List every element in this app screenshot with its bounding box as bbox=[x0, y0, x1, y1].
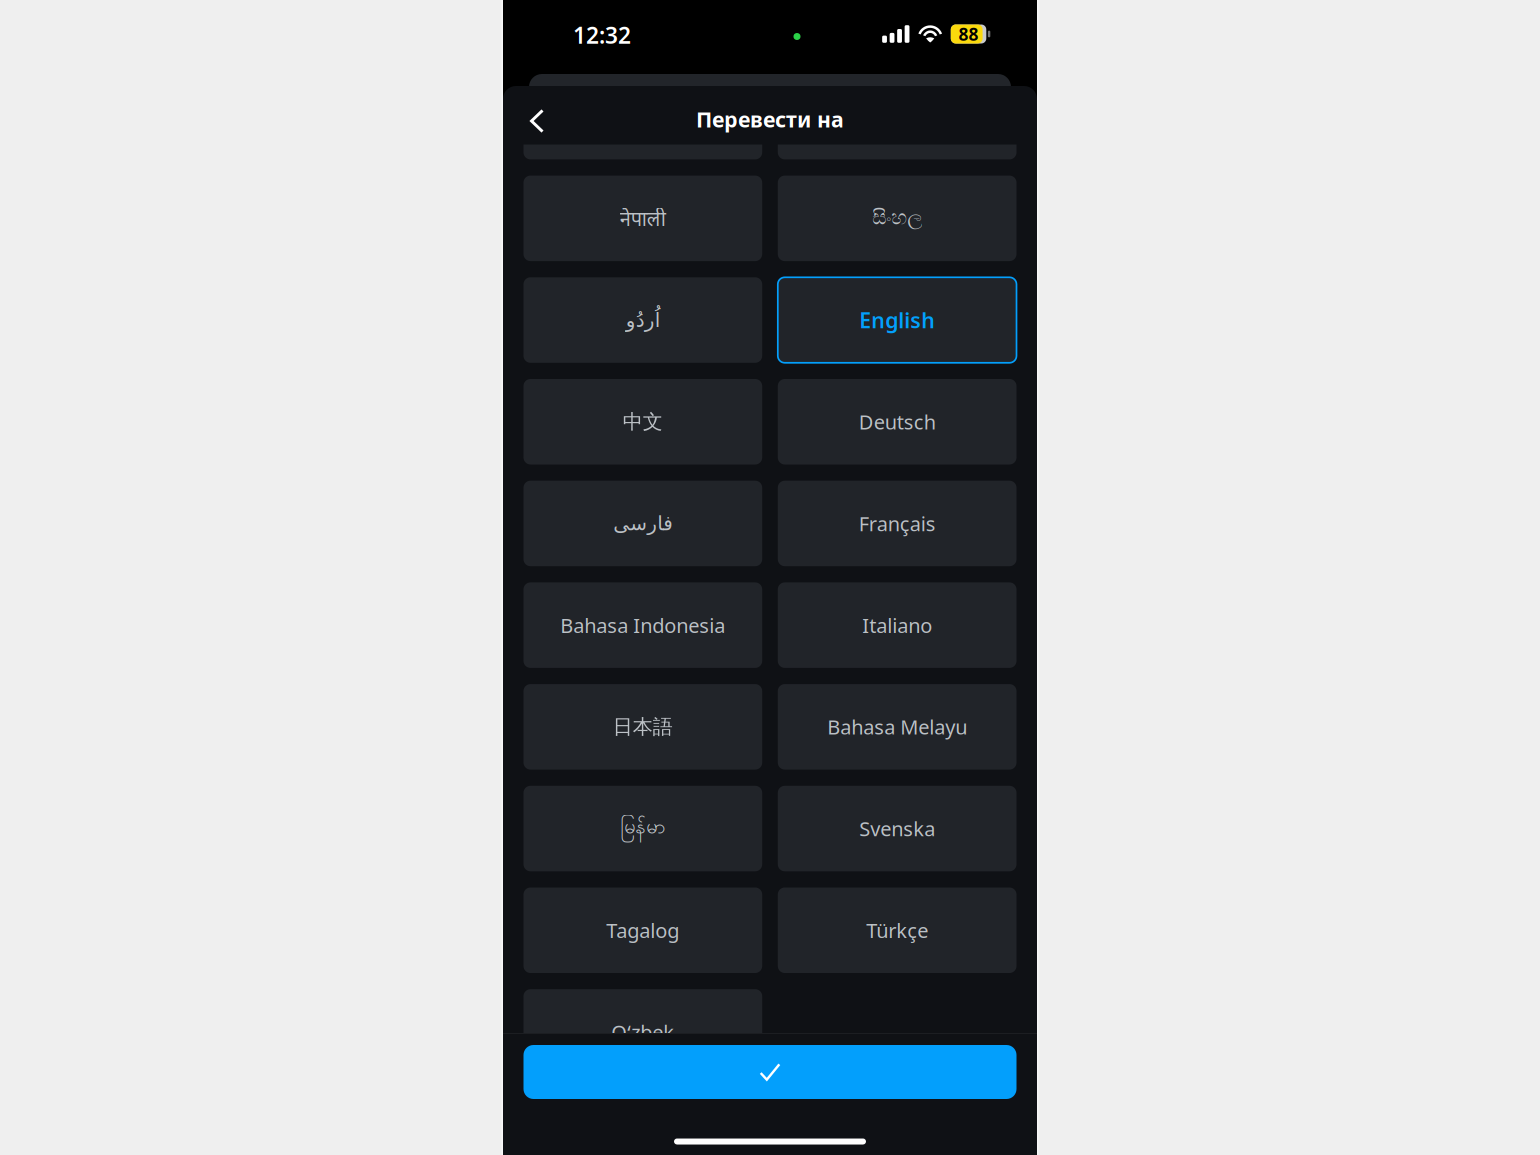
button[interactable]: မြန်မာ bbox=[523, 786, 762, 871]
staticText: Перевести на bbox=[696, 105, 844, 133]
staticText: O‘zbek bbox=[611, 1019, 674, 1045]
button[interactable]: فارسی bbox=[523, 481, 762, 566]
staticText: Italiano bbox=[862, 612, 932, 638]
button[interactable]: Confirm selection bbox=[523, 1045, 1016, 1099]
button[interactable]: 中文 bbox=[523, 379, 762, 464]
staticText: Svenska bbox=[859, 815, 935, 842]
staticText: Bahasa Indonesia bbox=[560, 612, 725, 638]
button[interactable]: Back bbox=[514, 98, 560, 144]
button[interactable]: Türkçe bbox=[778, 887, 1016, 973]
button[interactable]: اُردُو bbox=[523, 277, 762, 363]
staticText: Bahasa Melayu bbox=[827, 714, 967, 740]
button[interactable]: ਪੰਜਾਬੀ bbox=[523, 74, 762, 159]
button[interactable]: Svenska bbox=[778, 786, 1016, 871]
button[interactable]: සිංහල bbox=[778, 176, 1016, 261]
staticText: नेपाली bbox=[620, 205, 666, 232]
staticText: Français bbox=[859, 510, 936, 537]
staticText: 12:32 bbox=[573, 20, 631, 50]
button[interactable]: Tagalog bbox=[523, 887, 762, 973]
button[interactable]: Bahasa Melayu bbox=[778, 684, 1016, 770]
button[interactable]: 日本語 bbox=[523, 684, 762, 770]
staticText: Deutsch bbox=[859, 408, 936, 435]
staticText: မြန်မာ bbox=[620, 814, 665, 843]
staticText: සිංහල bbox=[872, 209, 922, 228]
button[interactable]: Français bbox=[778, 481, 1016, 566]
button[interactable]: नेपाली bbox=[523, 176, 762, 261]
button[interactable]: தமிழ் bbox=[778, 74, 1016, 159]
staticText: 中文 bbox=[623, 409, 663, 434]
button[interactable]: Italiano bbox=[778, 582, 1016, 668]
button[interactable]: Bahasa Indonesia bbox=[523, 582, 762, 668]
staticText: 日本語 bbox=[613, 715, 673, 739]
button[interactable]: O‘zbek bbox=[523, 989, 762, 1075]
staticText: English bbox=[859, 306, 935, 334]
button[interactable]: English bbox=[778, 277, 1016, 363]
staticText: اُردُو bbox=[625, 309, 660, 331]
staticText: فارسی bbox=[613, 512, 673, 535]
staticText: Türkçe bbox=[866, 917, 928, 944]
button[interactable]: Deutsch bbox=[778, 379, 1016, 464]
staticText: 88 bbox=[958, 22, 978, 45]
staticText: Tagalog bbox=[606, 917, 679, 944]
